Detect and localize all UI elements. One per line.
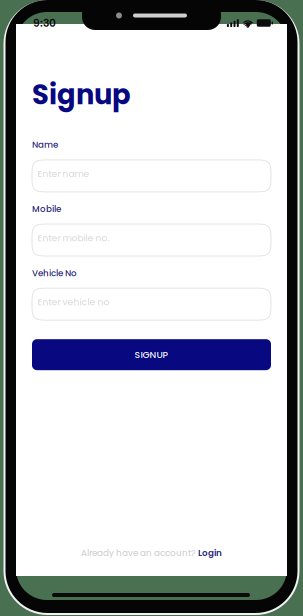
button[interactable]: Enter mobile no. — [32, 224, 271, 256]
staticText: Name — [32, 139, 58, 151]
staticText: Enter vehicle no — [37, 296, 109, 308]
staticText: Enter mobile no. — [37, 232, 109, 244]
staticText: Login — [198, 547, 222, 559]
staticText: Already have an account? — [81, 547, 198, 559]
staticText: 9:30 — [33, 15, 56, 30]
button[interactable]: Enter name — [32, 160, 271, 192]
staticText: Vehicle No — [32, 267, 77, 279]
staticText: Signup — [32, 75, 131, 114]
button[interactable]: SIGNUP — [32, 339, 271, 370]
staticText: SIGNUP — [134, 348, 168, 361]
staticText: Enter name — [37, 168, 89, 180]
button[interactable]: Enter vehicle no — [32, 288, 271, 320]
staticText: Mobile — [32, 203, 61, 215]
button[interactable]: Already have an account? — [81, 547, 222, 559]
